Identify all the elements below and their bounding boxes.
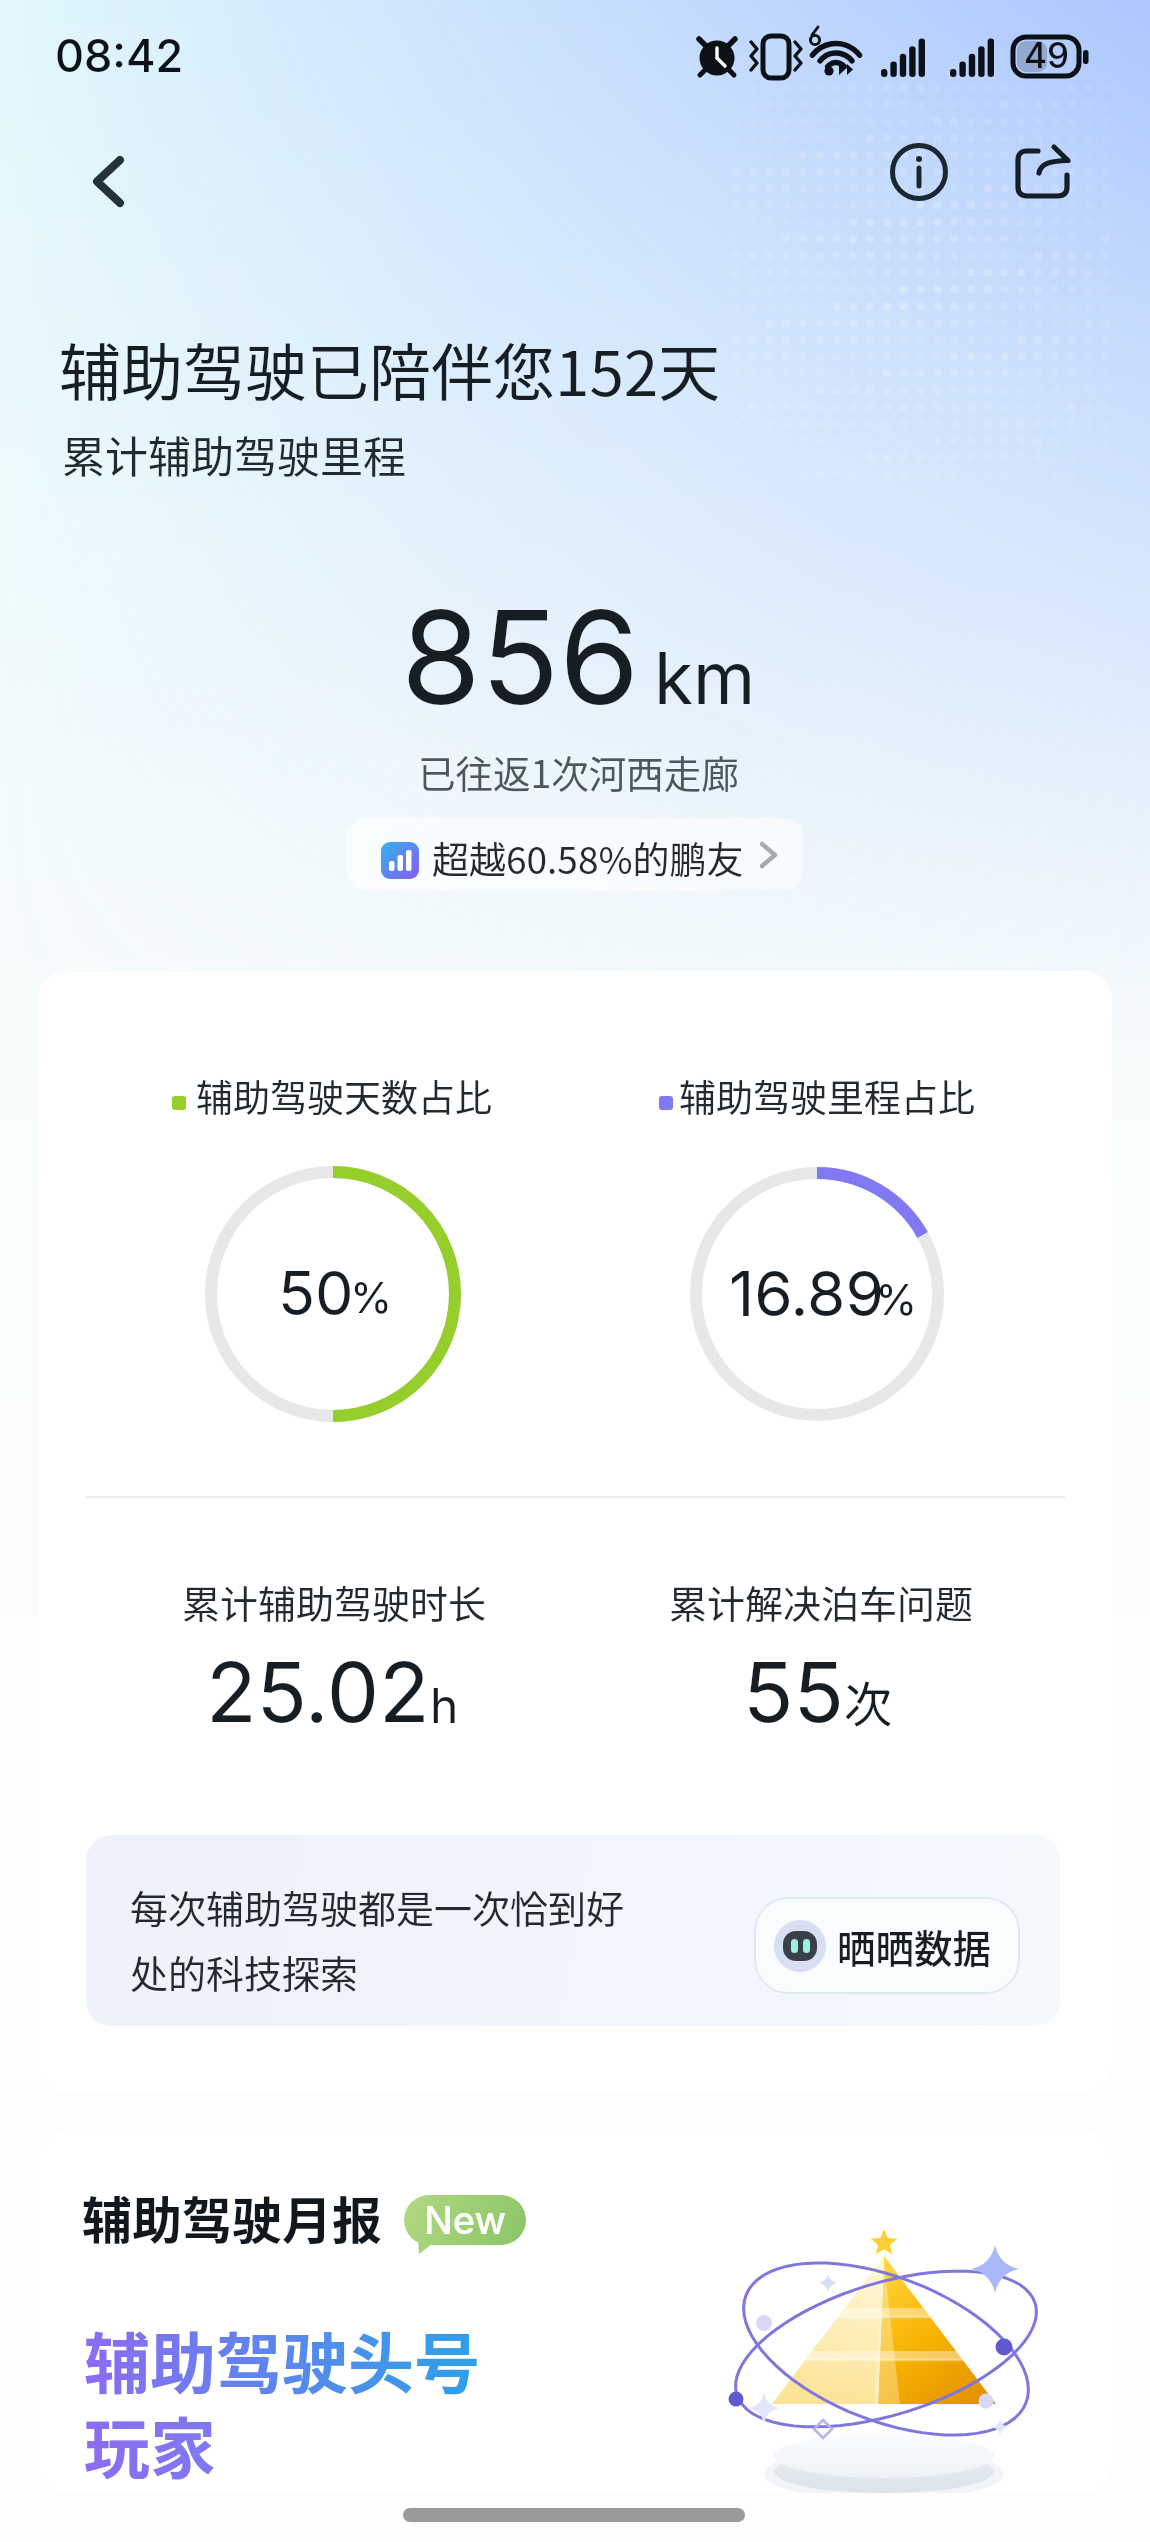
staticText: 25.02 — [206, 1642, 430, 1742]
staticText: 晒晒数据 — [837, 1918, 992, 1974]
staticText: 辅助驾驶月报 — [82, 2181, 382, 2253]
staticText: 处的科技探索 — [130, 1944, 359, 1999]
staticText: km — [654, 635, 756, 721]
staticText: New — [424, 2197, 506, 2243]
staticText: 玩家 — [84, 2396, 216, 2492]
staticText: 累计解决泊车问题 — [669, 1574, 974, 1629]
button[interactable]: Information — [885, 138, 953, 206]
staticText: 856 — [401, 579, 640, 735]
button[interactable]: Share — [1009, 141, 1081, 213]
staticText: 已往返1次河西走廊 — [418, 744, 739, 798]
staticText: h — [430, 1676, 459, 1734]
staticText: 辅助驾驶里程占比 — [679, 1069, 975, 1123]
staticText: 辅助驾驶天数占比 — [196, 1069, 492, 1123]
button[interactable]: 辅助驾驶月报 — [38, 2130, 1112, 2493]
staticText: % — [350, 1271, 393, 1323]
button[interactable]: 晒晒数据 — [754, 1897, 1020, 1994]
staticText: 49 — [1024, 34, 1070, 76]
staticText: 辅助驾驶已陪伴您152天 — [59, 324, 721, 414]
staticText: 每次辅助驾驶都是一次恰到好 — [130, 1879, 625, 1934]
staticText: 辅助驾驶头号 — [84, 2311, 480, 2407]
staticText: 16.89 — [729, 1256, 884, 1331]
staticText: % — [875, 1273, 918, 1325]
button[interactable]: Back — [66, 140, 150, 224]
button[interactable]: 超越60.58%的鹏友 — [347, 818, 803, 891]
staticText: 超越60.58%的鹏友 — [432, 831, 744, 885]
staticText: 次 — [844, 1666, 893, 1736]
staticText: 累计辅助驾驶时长 — [182, 1574, 487, 1629]
staticText: 08:42 — [55, 28, 184, 82]
staticText: 累计辅助驾驶里程 — [62, 423, 406, 485]
staticText: 50 — [278, 1256, 354, 1330]
button[interactable]: New — [404, 2195, 526, 2245]
staticText: 55 — [743, 1642, 844, 1742]
